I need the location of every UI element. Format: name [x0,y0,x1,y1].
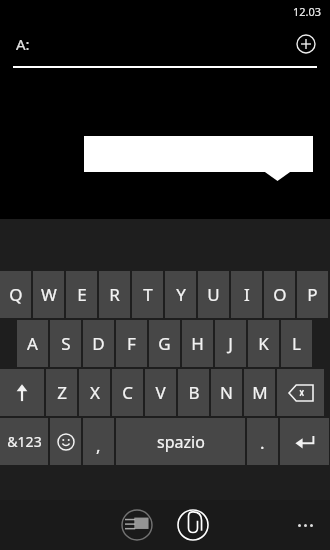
staticText: S [61,332,71,355]
staticText: M [252,381,268,404]
button[interactable]: R [99,271,130,318]
staticText: K [258,332,269,355]
staticText: X [90,381,100,404]
button[interactable]: V [145,369,176,416]
button[interactable]: P [297,271,328,318]
button[interactable]: Emoji [50,418,81,465]
staticText: Y [176,283,186,306]
button[interactable]: L [281,320,312,367]
staticText: . [260,431,265,454]
button[interactable]: B [178,369,209,416]
button[interactable]: N [211,369,242,416]
button[interactable]: U [198,271,229,318]
button[interactable]: O [264,271,295,318]
staticText: Q [9,283,23,306]
staticText: F [127,332,136,355]
staticText: J [228,332,233,355]
button[interactable]: Shift [0,369,44,416]
button[interactable]: W [33,271,64,318]
staticText: U [207,283,220,306]
staticText: G [158,332,171,355]
button[interactable]: . [247,418,278,465]
button[interactable]: K [248,320,279,367]
button[interactable]: C [112,369,143,416]
button[interactable]: &123 [0,418,48,465]
button[interactable]: H [182,320,213,367]
staticText: O [273,283,287,306]
staticText: E [77,283,87,306]
staticText: A [27,332,38,355]
button[interactable]: Backspace [277,369,324,416]
staticText: N [220,381,233,404]
staticText: I [244,283,250,306]
staticText: R [109,283,120,306]
button[interactable]: Q [0,271,31,318]
button[interactable] [84,136,313,181]
staticText: 12.03 [293,4,322,19]
button[interactable]: A [17,320,48,367]
staticText: W [41,283,57,306]
button[interactable]: F [116,320,147,367]
button[interactable]: Z [46,369,77,416]
button[interactable]: D [83,320,114,367]
button[interactable]: I [231,271,262,318]
button[interactable]: Y [165,271,196,318]
button[interactable]: spazio [116,418,245,465]
button[interactable]: G [149,320,180,367]
staticText: H [191,332,204,355]
staticText: A: [16,34,30,54]
button[interactable]: Add recipient [296,34,316,54]
staticText: L [292,332,301,355]
staticText: Z [57,381,67,404]
staticText: &123 [7,432,42,451]
button[interactable]: M [244,369,275,416]
button[interactable]: T [132,271,163,318]
button[interactable]: J [215,320,246,367]
staticText: B [188,381,200,404]
button[interactable]: Send message [121,509,153,541]
staticText: D [92,332,105,355]
staticText: C [122,381,133,404]
staticText: T [143,283,153,306]
button[interactable]: E [66,271,97,318]
button[interactable]: S [50,320,81,367]
staticText: spazio [157,431,205,453]
button[interactable]: More options [292,512,318,538]
staticText: , [96,434,101,457]
button[interactable]: X [79,369,110,416]
staticText: V [155,381,166,404]
button[interactable]: , [83,418,114,465]
staticText: P [307,283,318,306]
button[interactable]: A: [0,22,330,66]
button[interactable]: Attach [177,509,209,541]
button[interactable]: Enter [280,418,329,465]
